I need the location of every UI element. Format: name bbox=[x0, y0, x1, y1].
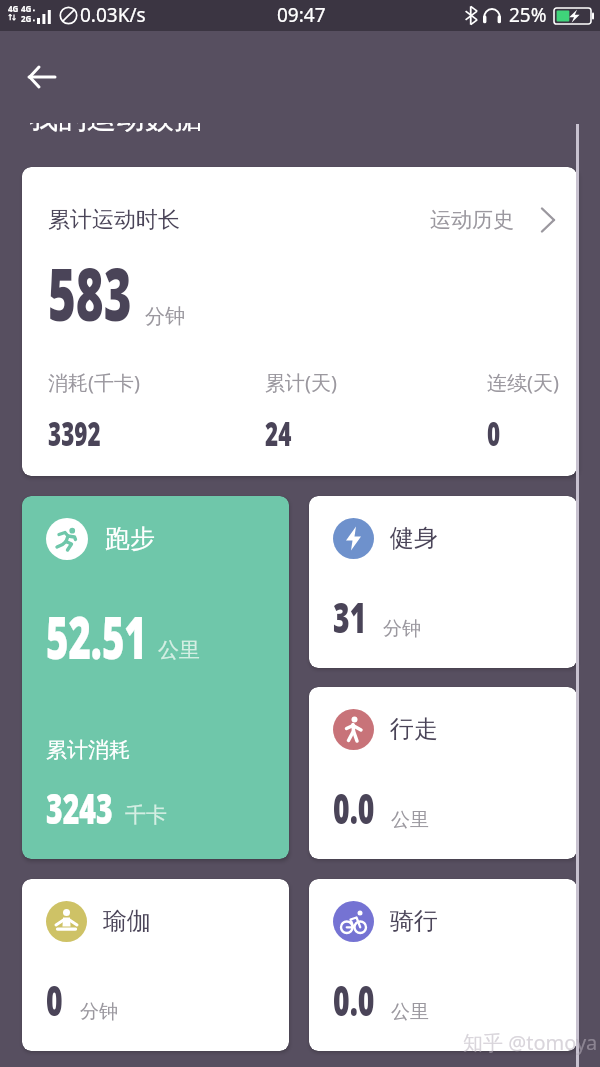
button[interactable]: 健身 bbox=[309, 496, 577, 668]
staticText: 3243 bbox=[46, 778, 113, 837]
staticText: 知乎 @tomoya bbox=[463, 1029, 598, 1056]
button[interactable]: 行走 bbox=[309, 687, 577, 859]
staticText: 我的运动数据 bbox=[29, 123, 203, 132]
staticText: 公里 bbox=[158, 637, 200, 663]
staticText: 0.0 bbox=[333, 778, 375, 837]
button[interactable]: 运动历史 bbox=[430, 207, 555, 233]
staticText: 583 bbox=[48, 244, 132, 342]
staticText: 分钟 bbox=[145, 304, 185, 329]
staticText: 0 bbox=[46, 970, 63, 1029]
staticText: 4G bbox=[8, 3, 19, 14]
button[interactable]: 跑步 bbox=[22, 496, 289, 859]
button[interactable]: 瑜伽 bbox=[22, 879, 289, 1051]
staticText: 0 bbox=[487, 410, 500, 456]
staticText: 瑜伽 bbox=[103, 906, 151, 936]
staticText: 09:47 bbox=[277, 2, 326, 28]
staticText: 累计运动时长 bbox=[48, 206, 180, 234]
button[interactable]: Back bbox=[20, 55, 64, 99]
staticText: 4G bbox=[21, 3, 32, 14]
staticText: 24 bbox=[265, 410, 291, 456]
staticText: 骑行 bbox=[390, 906, 438, 936]
staticText: 累计(天) bbox=[265, 369, 337, 396]
staticText: 千卡 bbox=[125, 802, 167, 828]
staticText: 分钟 bbox=[80, 1000, 118, 1024]
staticText: 跑步 bbox=[105, 523, 155, 554]
staticText: 52.51 bbox=[46, 597, 147, 676]
staticText: 3392 bbox=[48, 410, 101, 456]
staticText: 2G bbox=[21, 13, 32, 24]
button[interactable]: 骑行 bbox=[309, 879, 577, 1051]
staticText: 31 bbox=[333, 587, 367, 646]
staticText: 累计消耗 bbox=[46, 737, 130, 763]
staticText: 0.03K/s bbox=[80, 2, 146, 28]
staticText: 行走 bbox=[390, 714, 438, 744]
staticText: 连续(天) bbox=[487, 369, 559, 396]
button[interactable]: 累计运动时长 bbox=[22, 167, 577, 476]
staticText: 健身 bbox=[390, 523, 438, 553]
staticText: 公里 bbox=[391, 1000, 429, 1024]
staticText: 分钟 bbox=[383, 617, 421, 641]
staticText: 运动历史 bbox=[430, 207, 514, 233]
staticText: 25% bbox=[509, 2, 547, 28]
staticText: 0.0 bbox=[333, 970, 375, 1029]
staticText: 消耗(千卡) bbox=[48, 369, 140, 396]
staticText: 公里 bbox=[391, 808, 429, 832]
